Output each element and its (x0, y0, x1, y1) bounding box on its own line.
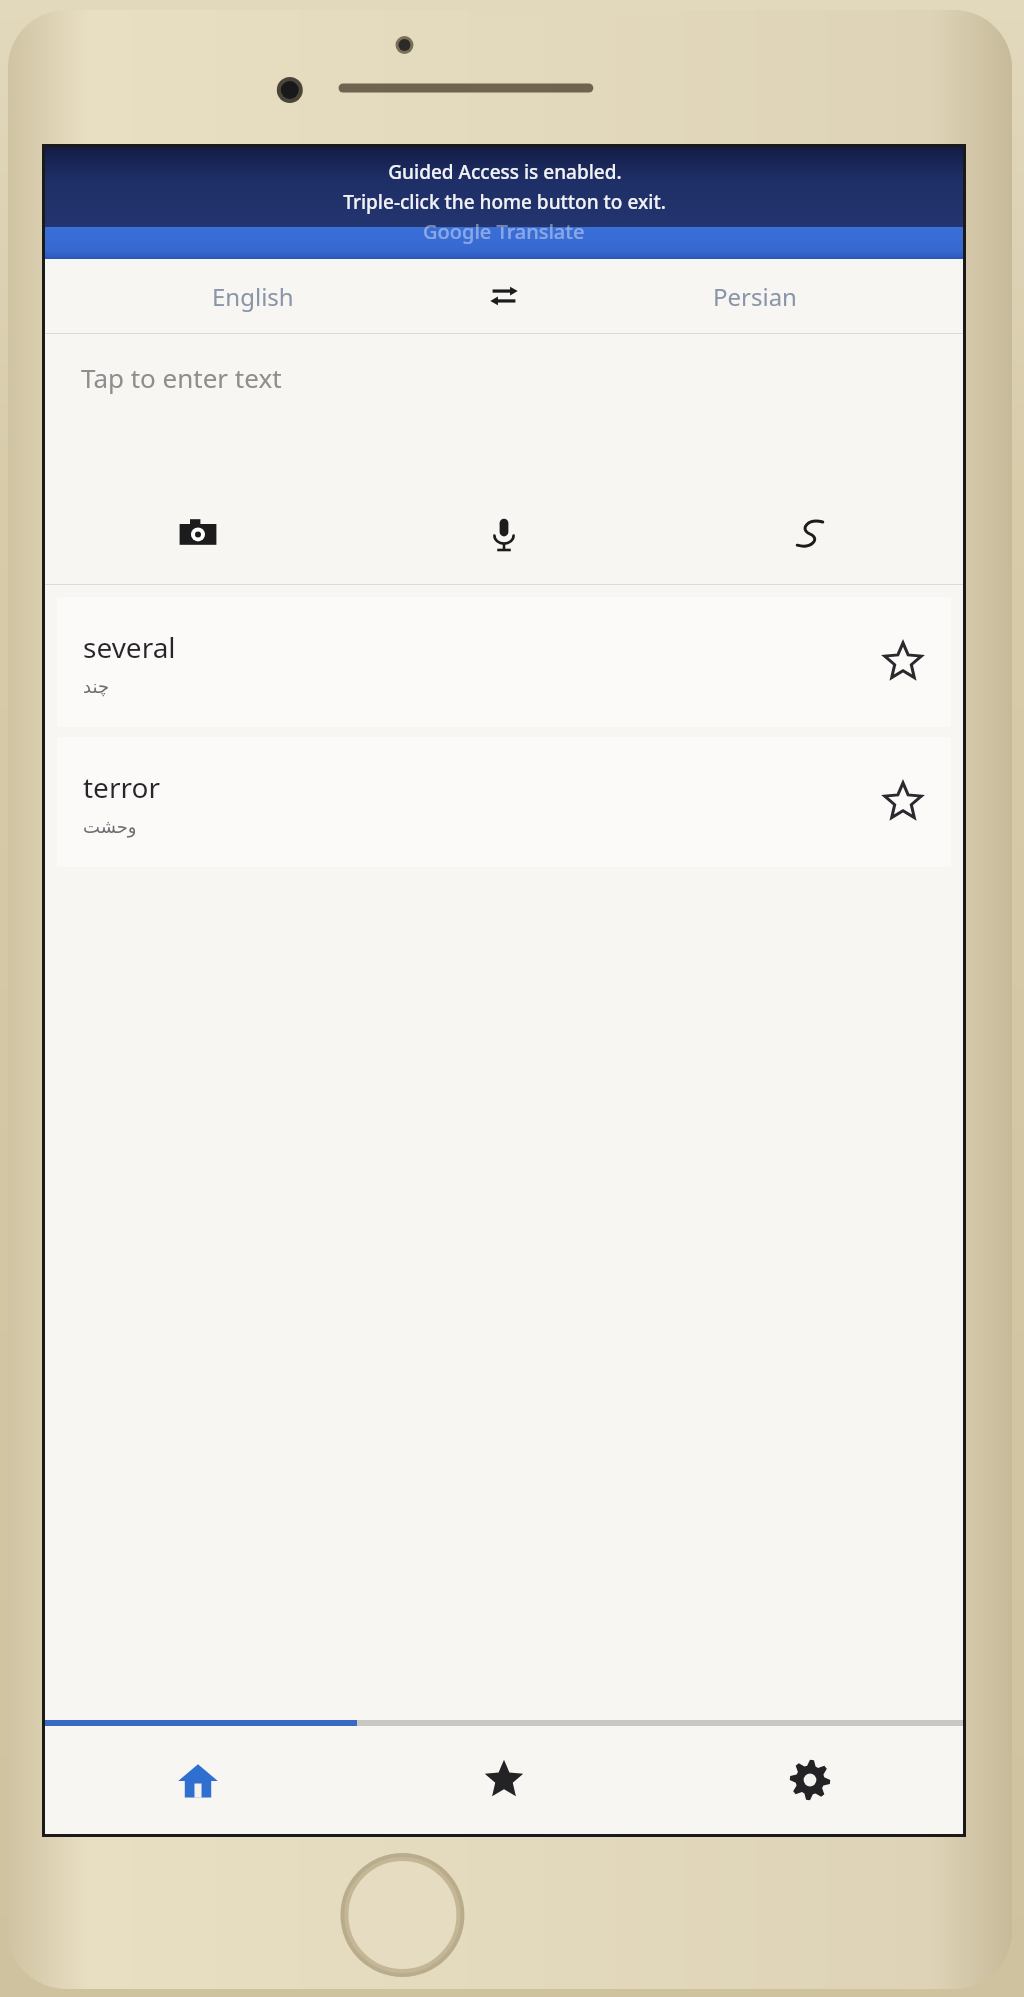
button[interactable]: English (45, 259, 461, 333)
button[interactable]: Tap to enter text (45, 334, 963, 484)
button[interactable]: Camera input (45, 484, 351, 584)
button[interactable]: Phrasebook (351, 1726, 657, 1834)
staticText: چند (83, 676, 110, 697)
staticText: Persian (713, 280, 797, 313)
button[interactable]: terror (57, 737, 951, 867)
button[interactable]: Settings (657, 1726, 963, 1834)
staticText: وحشت (83, 816, 137, 837)
button[interactable]: Swap languages (461, 259, 547, 333)
staticText: Google Translate (423, 218, 585, 245)
button[interactable]: Save terror to phrasebook (855, 754, 951, 850)
button[interactable]: Handwriting input (657, 484, 963, 584)
button[interactable]: Save several to phrasebook (855, 614, 951, 710)
staticText: Guided Access is enabled. (388, 159, 622, 185)
button[interactable]: Persian (547, 259, 963, 333)
button[interactable]: Home (45, 1726, 351, 1834)
staticText: terror (83, 768, 160, 806)
staticText: Tap to enter text (81, 360, 282, 395)
button[interactable]: Voice input (351, 484, 657, 584)
staticText: several (83, 628, 176, 666)
button[interactable]: several (57, 597, 951, 727)
staticText: English (212, 280, 294, 313)
staticText: Triple-click the home button to exit. (343, 189, 666, 215)
